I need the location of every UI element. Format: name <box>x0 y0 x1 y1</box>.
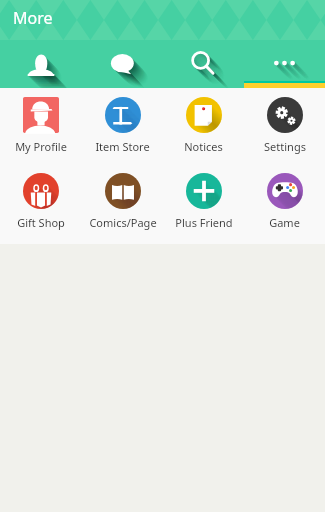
staticText: Notices <box>184 139 223 154</box>
staticText: Settings <box>264 139 306 154</box>
staticText: More <box>13 7 53 29</box>
button[interactable]: Friends <box>0 46 82 88</box>
button[interactable]: Comics/Page <box>82 164 163 242</box>
button[interactable]: Gift Shop <box>0 164 82 242</box>
button[interactable]: Chats <box>82 46 163 88</box>
button[interactable]: My Profile <box>0 88 82 166</box>
button[interactable]: Plus Friend <box>163 164 244 242</box>
button[interactable]: More <box>244 46 325 88</box>
button[interactable]: Settings <box>244 88 325 166</box>
staticText: Item Store <box>95 139 150 154</box>
staticText: My Profile <box>15 139 67 154</box>
staticText: Comics/Page <box>89 215 157 230</box>
button[interactable]: Notices <box>163 88 244 166</box>
button[interactable]: Game <box>244 164 325 242</box>
staticText: Plus Friend <box>175 215 233 230</box>
staticText: Gift Shop <box>17 215 65 230</box>
staticText: Game <box>269 215 300 230</box>
button[interactable]: Search <box>163 46 244 88</box>
button[interactable]: Item Store <box>82 88 163 166</box>
